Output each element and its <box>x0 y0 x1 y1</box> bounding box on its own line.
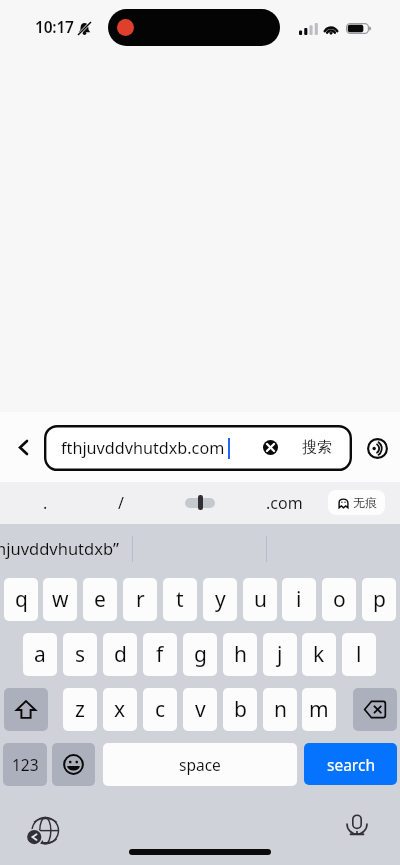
button[interactable]: b <box>223 688 257 731</box>
button[interactable]: a <box>23 633 57 676</box>
staticText: v <box>195 695 206 724</box>
button[interactable]: j <box>263 633 297 676</box>
button[interactable]: Clear text <box>253 430 288 465</box>
staticText: j <box>277 640 283 669</box>
button[interactable]: Cursor drag handle <box>180 486 220 520</box>
button[interactable]: hjuvddvhutdxb” <box>0 526 132 570</box>
button[interactable]: search <box>304 743 397 785</box>
button[interactable]: Emoji keyboard <box>52 743 95 786</box>
staticText: .com <box>266 492 303 514</box>
button[interactable]: x <box>103 688 137 731</box>
button[interactable]: Back <box>6 430 41 465</box>
staticText: s <box>75 640 86 669</box>
staticText: n <box>274 695 287 724</box>
staticText: m <box>309 695 329 724</box>
staticText: search <box>327 754 375 775</box>
staticText: space <box>179 754 221 775</box>
button[interactable]: .com <box>262 486 306 520</box>
staticText: p <box>373 585 386 614</box>
staticText: i <box>296 585 302 614</box>
button[interactable]: n <box>263 688 297 731</box>
staticText: r <box>136 585 145 614</box>
button[interactable]: o <box>322 578 356 621</box>
button[interactable]: e <box>83 578 117 621</box>
staticText: d <box>114 640 127 669</box>
button[interactable]: m <box>302 688 336 731</box>
button[interactable]: p <box>362 578 396 621</box>
button[interactable]: c <box>143 688 177 731</box>
button[interactable]: s <box>63 633 97 676</box>
staticText: l <box>356 640 362 669</box>
button[interactable]: 123 <box>3 743 47 786</box>
button[interactable]: f <box>143 633 177 676</box>
staticText: x <box>114 695 126 724</box>
staticText: q <box>15 585 28 614</box>
button[interactable]: h <box>223 633 257 676</box>
button[interactable]: Voice input <box>340 808 374 842</box>
button[interactable]: k <box>302 633 336 676</box>
button[interactable]: l <box>342 633 376 676</box>
button[interactable]: . <box>28 486 62 520</box>
button[interactable]: u <box>243 578 277 621</box>
button[interactable]: 搜索 <box>293 432 341 463</box>
button[interactable]: space <box>103 743 297 786</box>
button[interactable]: / <box>104 486 138 520</box>
button[interactable]: w <box>43 578 77 621</box>
button[interactable]: g <box>183 633 217 676</box>
button[interactable]: z <box>63 688 97 731</box>
button[interactable]: Listen to page <box>360 431 394 465</box>
button[interactable]: v <box>183 688 217 731</box>
staticText: z <box>75 695 85 724</box>
staticText: y <box>215 585 226 614</box>
staticText: fthjuvddvhutdxb.com <box>61 437 225 459</box>
staticText: g <box>194 640 207 669</box>
staticText: b <box>234 695 247 724</box>
button[interactable]: Backspace <box>353 688 397 731</box>
staticText: 搜索 <box>302 438 332 457</box>
button[interactable]: i <box>282 578 316 621</box>
staticText: hjuvddvhutdxb” <box>0 537 119 559</box>
staticText: / <box>118 492 124 514</box>
staticText: a <box>34 640 46 669</box>
staticText: . <box>43 492 48 514</box>
staticText: w <box>52 585 69 614</box>
staticText: 10:17 <box>35 16 74 36</box>
button[interactable]: r <box>123 578 157 621</box>
button[interactable]: q <box>4 578 38 621</box>
button[interactable]: t <box>163 578 197 621</box>
button[interactable]: d <box>103 633 137 676</box>
button[interactable]: Change keyboard <box>25 807 61 843</box>
staticText: 123 <box>12 754 39 775</box>
staticText: f <box>156 640 164 669</box>
button[interactable]: Shift <box>4 688 48 731</box>
staticText: c <box>155 695 166 724</box>
button[interactable]: fthjuvddvhutdxb.com <box>44 425 352 471</box>
staticText: u <box>254 585 267 614</box>
button[interactable]: 无痕 <box>328 490 385 515</box>
staticText: o <box>333 585 346 614</box>
staticText: 无痕 <box>353 495 377 510</box>
staticText: t <box>176 585 184 614</box>
staticText: h <box>234 640 247 669</box>
button[interactable]: y <box>203 578 237 621</box>
staticText: k <box>313 640 325 669</box>
staticText: e <box>94 585 106 614</box>
